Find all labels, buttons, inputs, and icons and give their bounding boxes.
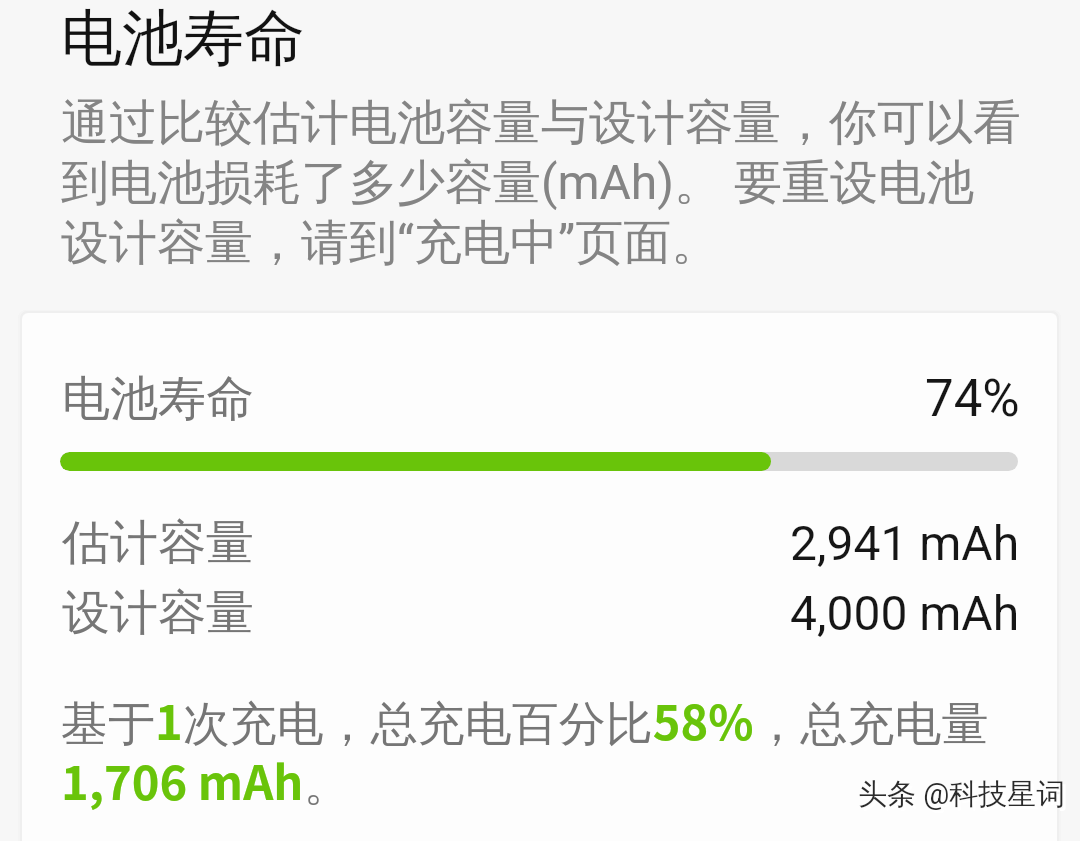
staticText: 74%	[925, 369, 1020, 429]
staticText: 通过比较估计电池容量与设计容量，你可以看	[61, 93, 1021, 153]
staticText: 2,941 mAh	[790, 515, 1020, 571]
staticText: 4,000 mAh	[790, 585, 1020, 641]
staticText: 估计容量	[62, 513, 254, 573]
button[interactable]: 设计容量	[22, 580, 1057, 646]
other: Battery health 74 percent	[60, 452, 1018, 471]
staticText: 设计容量，请到“充电中”页面。	[61, 213, 720, 273]
staticText: 设计容量	[62, 583, 254, 643]
button[interactable]: 电池寿命	[22, 366, 1057, 432]
staticText: 1,706 mAh。	[61, 745, 351, 813]
staticText: 电池寿命	[62, 369, 254, 429]
staticText: 到电池损耗了多少容量(mAh)。 要重设电池	[61, 153, 974, 213]
staticText: 基于1次充电，总充电百分比58%，总充电量	[61, 685, 989, 753]
button[interactable]: 估计容量	[22, 510, 1057, 576]
staticText: 头条 @科技星词	[861, 779, 1069, 816]
staticText: 头条 @科技星词	[858, 776, 1066, 813]
button[interactable]: 电池寿命	[22, 313, 1057, 841]
staticText: 电池寿命	[61, 0, 305, 77]
